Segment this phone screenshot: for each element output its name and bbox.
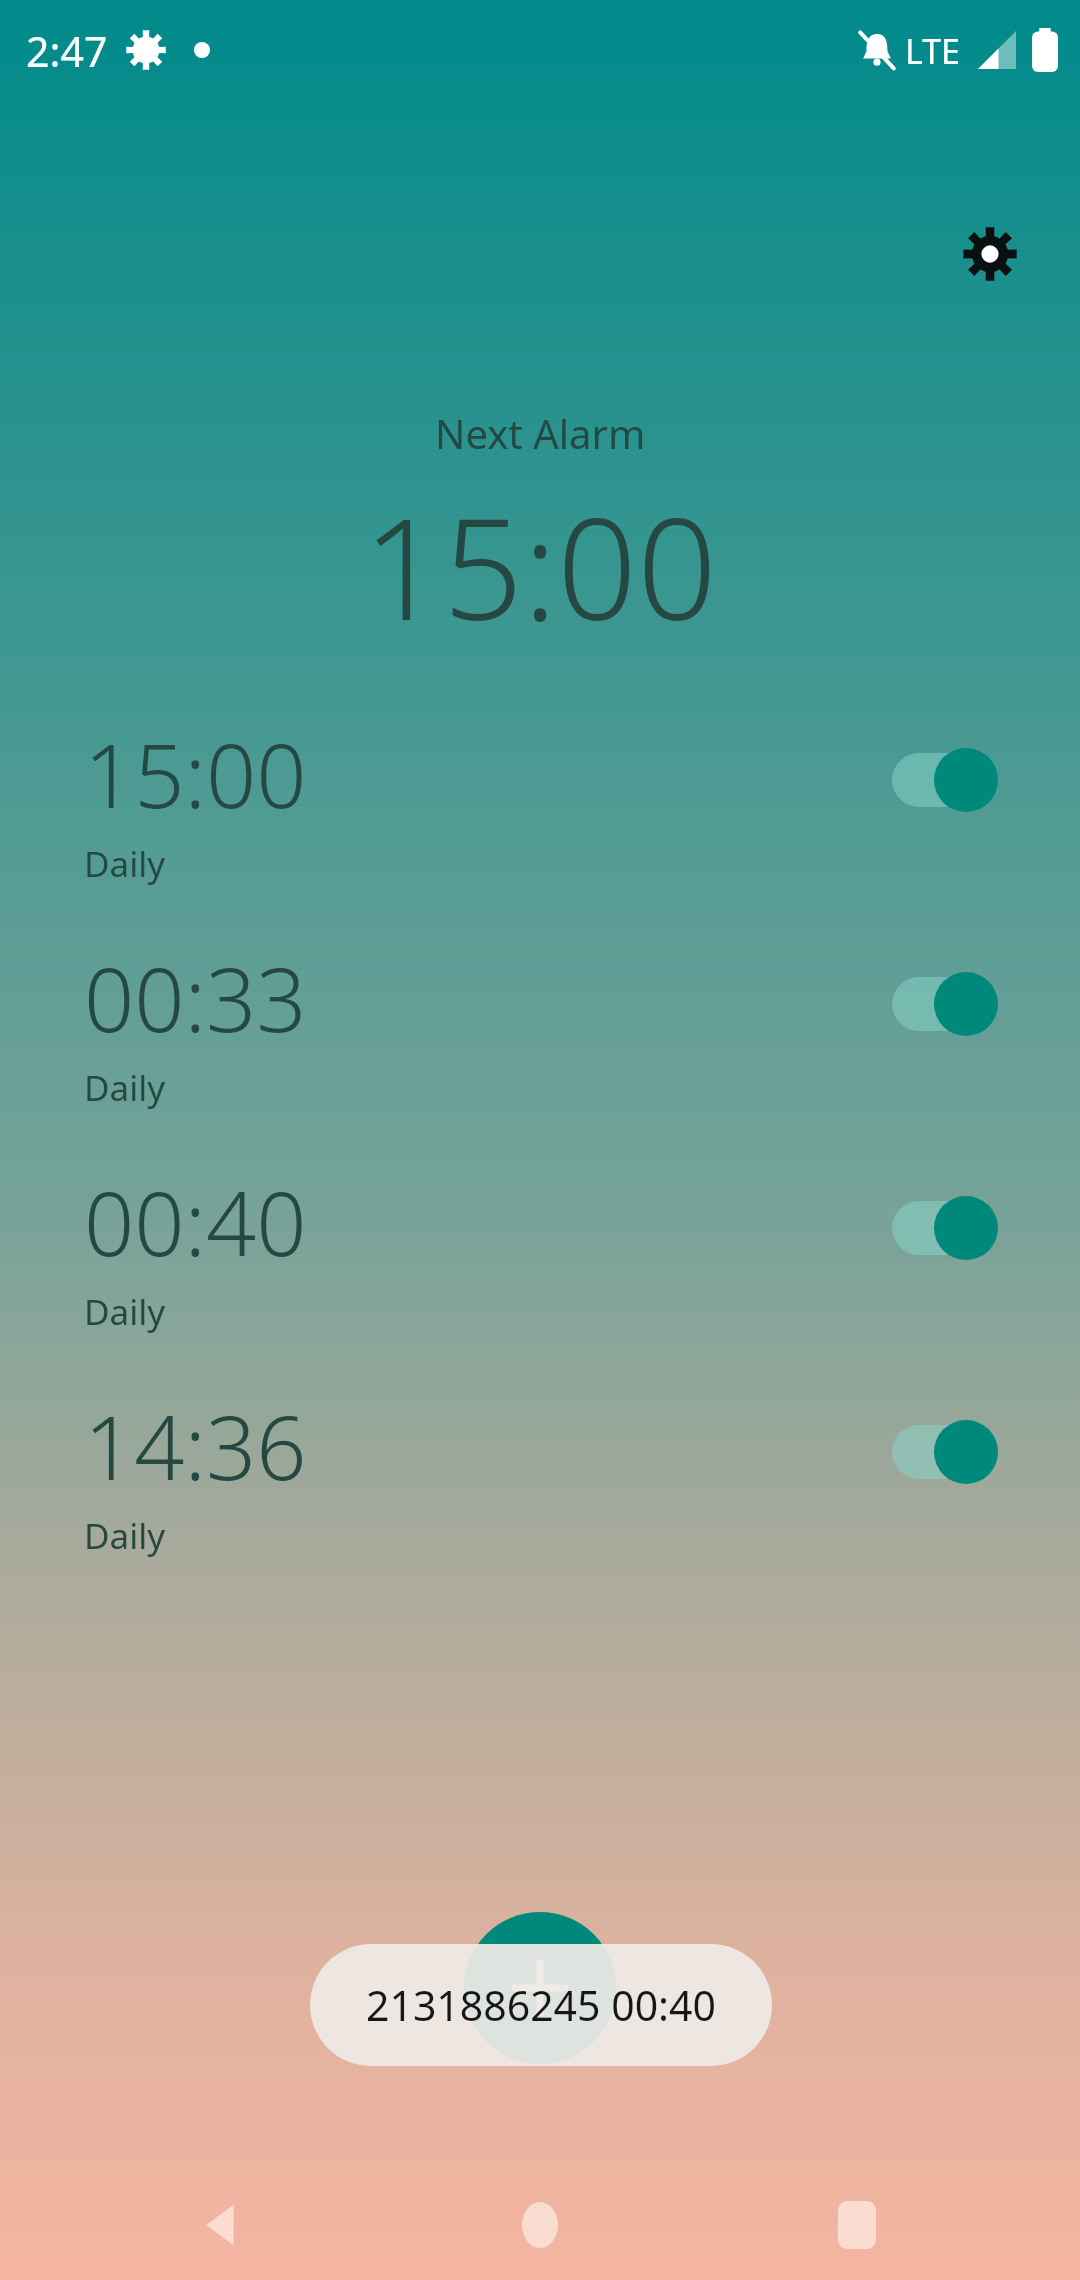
button[interactable]: Settings (936, 200, 1044, 308)
staticText: Daily (84, 840, 166, 888)
button[interactable]: 00:33 (0, 938, 1080, 1150)
button[interactable]: Toggle alarm 15:00 (890, 748, 1000, 812)
button[interactable]: Back (177, 2179, 269, 2271)
staticText: 2:47 (26, 23, 108, 79)
button[interactable]: Toggle alarm 00:33 (890, 972, 1000, 1036)
button[interactable]: Toggle alarm 14:36 (890, 1420, 1000, 1484)
staticText: 14:36 (84, 1386, 307, 1506)
staticText: 00:33 (84, 938, 307, 1058)
staticText: Daily (84, 1512, 166, 1560)
button[interactable]: 14:36 (0, 1386, 1080, 1598)
button[interactable]: Toggle alarm 00:40 (890, 1196, 1000, 1260)
button[interactable]: Add alarm (464, 1912, 616, 2064)
button[interactable]: Home (494, 2179, 586, 2271)
staticText: LTE (905, 28, 960, 74)
staticText: Next Alarm (435, 406, 646, 460)
staticText: 15:00 (363, 470, 717, 661)
staticText: Daily (84, 1288, 166, 1336)
staticText: 00:40 (84, 1162, 307, 1282)
button[interactable]: 00:40 (0, 1162, 1080, 1374)
staticText: Daily (84, 1064, 166, 1112)
button[interactable]: Recents (811, 2179, 903, 2271)
staticText: 15:00 (84, 714, 307, 834)
button[interactable]: 15:00 (0, 714, 1080, 926)
staticText: 2131886245 00:40 (366, 1977, 716, 2033)
